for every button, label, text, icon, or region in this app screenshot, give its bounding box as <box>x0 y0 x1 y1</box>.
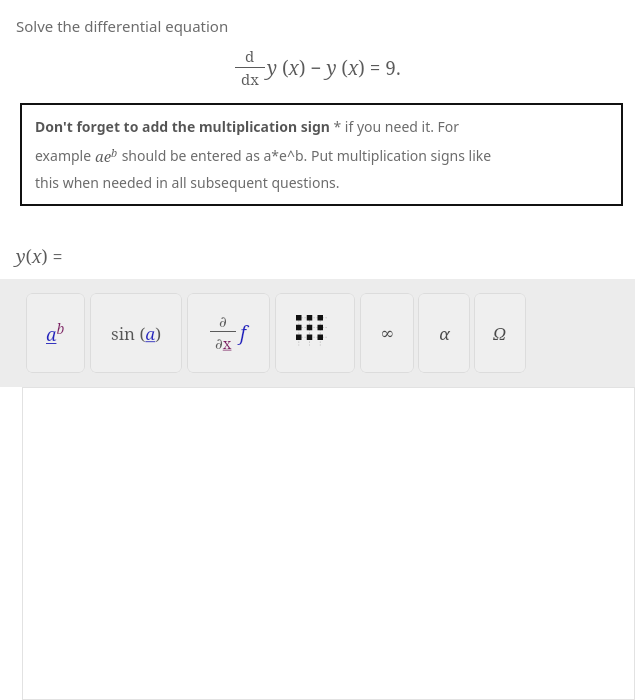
staticText: ∂ <box>219 313 227 330</box>
staticText: d <box>245 46 255 66</box>
staticText: α <box>439 322 450 345</box>
staticText: aeb <box>95 145 118 166</box>
staticText: Solve the differential equation <box>16 16 229 36</box>
button[interactable]: Greek letters <box>418 293 470 373</box>
button[interactable]: Partial derivative <box>187 293 270 373</box>
staticText: dx <box>241 69 259 89</box>
button[interactable]: Matrix <box>275 293 355 373</box>
button[interactable]: Sine function <box>90 293 182 373</box>
staticText: Ω <box>493 322 507 345</box>
staticText: y(x) = <box>16 244 63 269</box>
button[interactable]: Infinity <box>360 293 414 373</box>
button[interactable]: Power a to the b <box>26 293 85 373</box>
staticText: ∞ <box>380 323 395 343</box>
staticText: f <box>240 320 247 346</box>
staticText: should be entered as a*e^b. Put multipli… <box>118 146 492 165</box>
staticText: Don't forget to add the multiplication s… <box>35 117 460 136</box>
staticText: ∂x <box>215 333 232 353</box>
staticText: example <box>35 146 95 165</box>
staticText: ab <box>46 319 65 347</box>
staticText: this when needed in all subsequent quest… <box>35 173 340 192</box>
staticText: sin (a) <box>111 322 162 345</box>
staticText: y (x) − y (x) = 9. <box>267 55 401 81</box>
button[interactable]: Symbols <box>474 293 526 373</box>
